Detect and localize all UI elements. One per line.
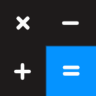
button[interactable]: Subtract xyxy=(48,0,96,48)
button[interactable]: Multiply xyxy=(0,0,48,48)
button[interactable]: Add xyxy=(0,48,48,96)
button[interactable]: Equals xyxy=(48,48,96,96)
